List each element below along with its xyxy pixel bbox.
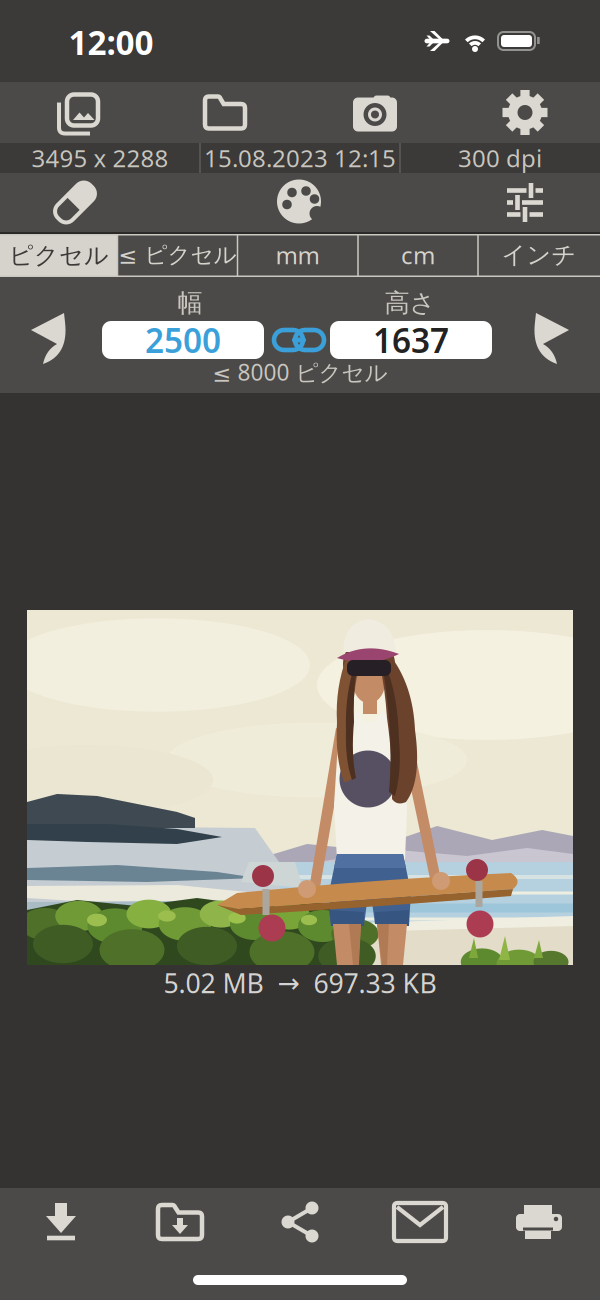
button[interactable]: Color palette — [225, 173, 375, 232]
button[interactable]: Settings — [450, 82, 600, 143]
staticText: 300 dpi — [458, 142, 542, 174]
staticText: 幅 — [177, 287, 202, 318]
button[interactable]: Lock aspect ratio — [272, 325, 326, 355]
button[interactable]: Photo Library — [0, 82, 150, 143]
button[interactable]: cm — [359, 233, 477, 276]
staticText: 1637 — [373, 318, 449, 362]
button[interactable]: Redo — [519, 308, 581, 370]
staticText: cm — [401, 239, 435, 271]
staticText: → — [277, 968, 299, 998]
staticText: ≤ ピクセル — [118, 241, 236, 269]
button[interactable]: Files — [150, 82, 300, 143]
button[interactable]: mm — [238, 233, 356, 276]
staticText: 高さ — [384, 287, 435, 318]
button[interactable]: Print — [484, 1192, 594, 1252]
staticText: 12:00 — [68, 20, 153, 64]
button[interactable]: インチ — [480, 233, 598, 276]
staticText: 5.02 MB — [163, 965, 263, 1001]
button[interactable]: Share — [245, 1192, 355, 1252]
staticText: 697.33 KB — [313, 965, 436, 1001]
button[interactable]: ピクセル — [0, 234, 118, 277]
button[interactable]: Width 2500 — [102, 318, 264, 362]
staticText: ピクセル — [9, 241, 109, 270]
button[interactable]: Adjustments — [450, 173, 600, 232]
staticText: 3495 x 2288 — [31, 142, 168, 174]
button[interactable]: Save — [6, 1192, 116, 1252]
staticText: ≤ 8000 ピクセル — [212, 357, 387, 387]
staticText: 15.08.2023 12:15 — [204, 142, 396, 174]
button[interactable]: Mail — [365, 1192, 475, 1252]
button[interactable]: Eraser — [0, 173, 150, 232]
button[interactable]: Camera — [300, 82, 450, 143]
button[interactable]: Save to folder — [125, 1192, 235, 1252]
button[interactable]: Undo — [19, 308, 81, 370]
button[interactable]: Height 1637 — [330, 318, 492, 362]
staticText: 2500 — [145, 318, 221, 362]
staticText: mm — [275, 239, 319, 271]
staticText: インチ — [501, 240, 576, 270]
button[interactable]: ≤ ピクセル — [118, 233, 236, 276]
